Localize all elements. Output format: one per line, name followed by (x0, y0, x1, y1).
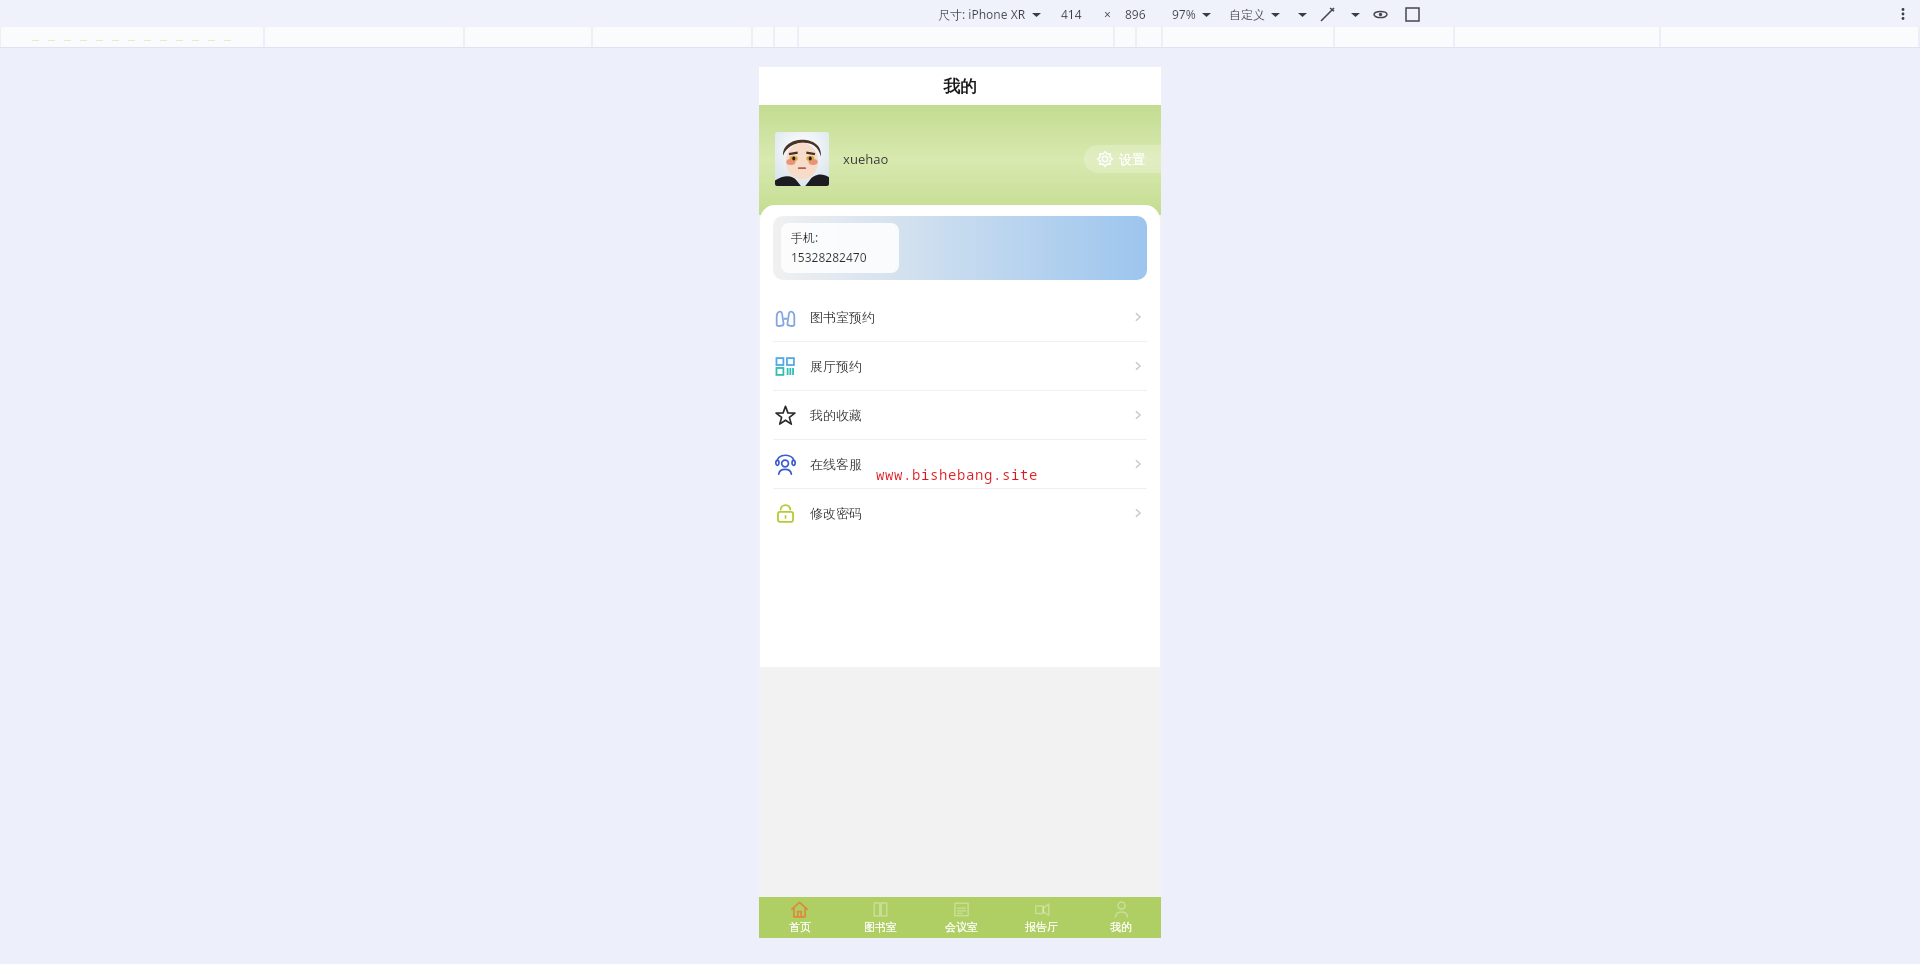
staticText: 97% (1172, 6, 1196, 22)
button[interactable]: 首页 (759, 897, 840, 938)
button[interactable]: 修改密码 (773, 489, 1147, 537)
staticText: 设置 (1119, 151, 1145, 167)
staticText: xuehao (843, 150, 889, 168)
button[interactable]: 手机: (773, 216, 1147, 280)
staticText: 会议室 (945, 920, 978, 934)
staticText: 414 (1061, 6, 1082, 22)
staticText: 15328282470 (791, 249, 867, 265)
staticText: 展厅预约 (810, 358, 862, 374)
button[interactable]: Profile photo (775, 132, 829, 186)
button[interactable]: 在线客服 (773, 440, 1147, 488)
button[interactable]: 展厅预约 (773, 342, 1147, 390)
staticText: 首页 (789, 920, 811, 934)
staticText: 手机: (791, 229, 819, 245)
staticText: 图书室 (864, 920, 897, 934)
staticText: × (1104, 6, 1111, 22)
button[interactable]: 图书室 (840, 897, 921, 938)
staticText: 报告厅 (1025, 920, 1058, 934)
button[interactable]: Screenshot (1402, 4, 1422, 24)
button[interactable]: Rotate (1317, 4, 1337, 24)
button[interactable]: 我的 (1081, 897, 1161, 938)
button[interactable]: 报告厅 (1001, 897, 1081, 938)
button[interactable]: Preview (1370, 4, 1390, 24)
button[interactable]: 我的收藏 (773, 391, 1147, 439)
button[interactable]: 图书室预约 (773, 293, 1147, 341)
staticText: 在线客服 (810, 456, 862, 472)
button[interactable]: 会议室 (921, 897, 1001, 938)
staticText: 我的 (1110, 920, 1132, 934)
staticText: 我的 (943, 76, 977, 97)
button[interactable]: More options (1886, 0, 1920, 27)
staticText: 896 (1125, 6, 1146, 22)
staticText: 修改密码 (810, 505, 862, 521)
button[interactable]: 设置 (1084, 145, 1161, 173)
staticText: 图书室预约 (810, 309, 875, 325)
staticText: www.bishebang.site (876, 465, 1038, 484)
staticText: 我的收藏 (810, 407, 862, 423)
staticText: 自定义 (1229, 7, 1265, 22)
staticText: 尺寸: iPhone XR (938, 6, 1026, 22)
